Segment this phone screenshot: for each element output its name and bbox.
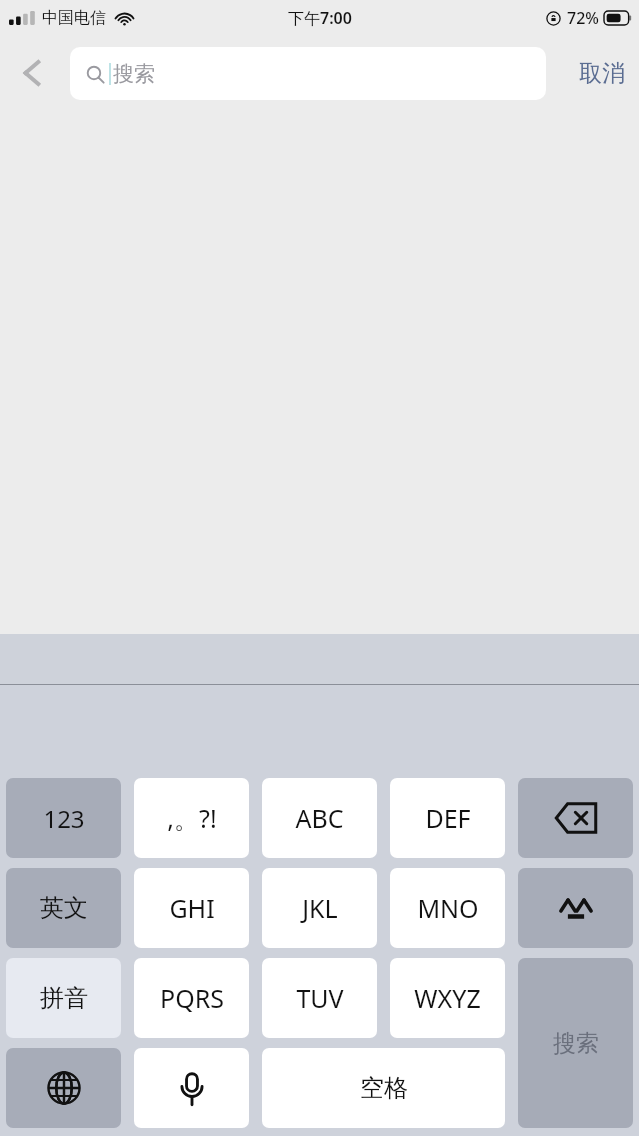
- staticText: DEF: [425, 801, 471, 835]
- staticText: 72%: [567, 7, 599, 29]
- staticText: JKL: [302, 891, 338, 925]
- button[interactable]: 取消: [579, 59, 625, 88]
- staticText: 取消: [579, 59, 625, 88]
- staticText: TUV: [296, 981, 344, 1015]
- staticText: GHI: [169, 891, 215, 925]
- button[interactable]: 123: [6, 778, 121, 858]
- staticText: 搜索: [113, 61, 155, 87]
- staticText: 拼音: [40, 983, 88, 1013]
- staticText: 空格: [360, 1073, 408, 1103]
- staticText: MNO: [417, 891, 479, 925]
- button[interactable]: ,。?!: [134, 778, 249, 858]
- button[interactable]: DEF: [390, 778, 505, 858]
- button[interactable]: Switch keyboard: [6, 1048, 121, 1128]
- button[interactable]: TUV: [262, 958, 377, 1038]
- button[interactable]: 英文: [6, 868, 121, 948]
- button[interactable]: 搜索: [518, 958, 633, 1128]
- button[interactable]: JKL: [262, 868, 377, 948]
- staticText: PQRS: [160, 981, 224, 1015]
- button[interactable]: PQRS: [134, 958, 249, 1038]
- button[interactable]: Delete: [518, 778, 633, 858]
- staticText: 英文: [40, 893, 88, 923]
- button[interactable]: WXYZ: [390, 958, 505, 1038]
- button[interactable]: GHI: [134, 868, 249, 948]
- staticText: WXYZ: [414, 981, 481, 1015]
- staticText: ABC: [295, 801, 344, 835]
- button[interactable]: 空格: [262, 1048, 505, 1128]
- button[interactable]: ABC: [262, 778, 377, 858]
- button[interactable]: Emoji: [518, 868, 633, 948]
- staticText: 中国电信: [42, 8, 106, 28]
- button[interactable]: 搜索: [70, 47, 546, 100]
- staticText: ,。?!: [167, 801, 217, 835]
- staticText: 搜索: [553, 1029, 599, 1058]
- button[interactable]: 拼音: [6, 958, 121, 1038]
- staticText: 123: [43, 802, 85, 835]
- staticText: 下午7:00: [288, 7, 352, 29]
- button[interactable]: MNO: [390, 868, 505, 948]
- button[interactable]: Back: [0, 41, 64, 105]
- button[interactable]: Voice input: [134, 1048, 249, 1128]
